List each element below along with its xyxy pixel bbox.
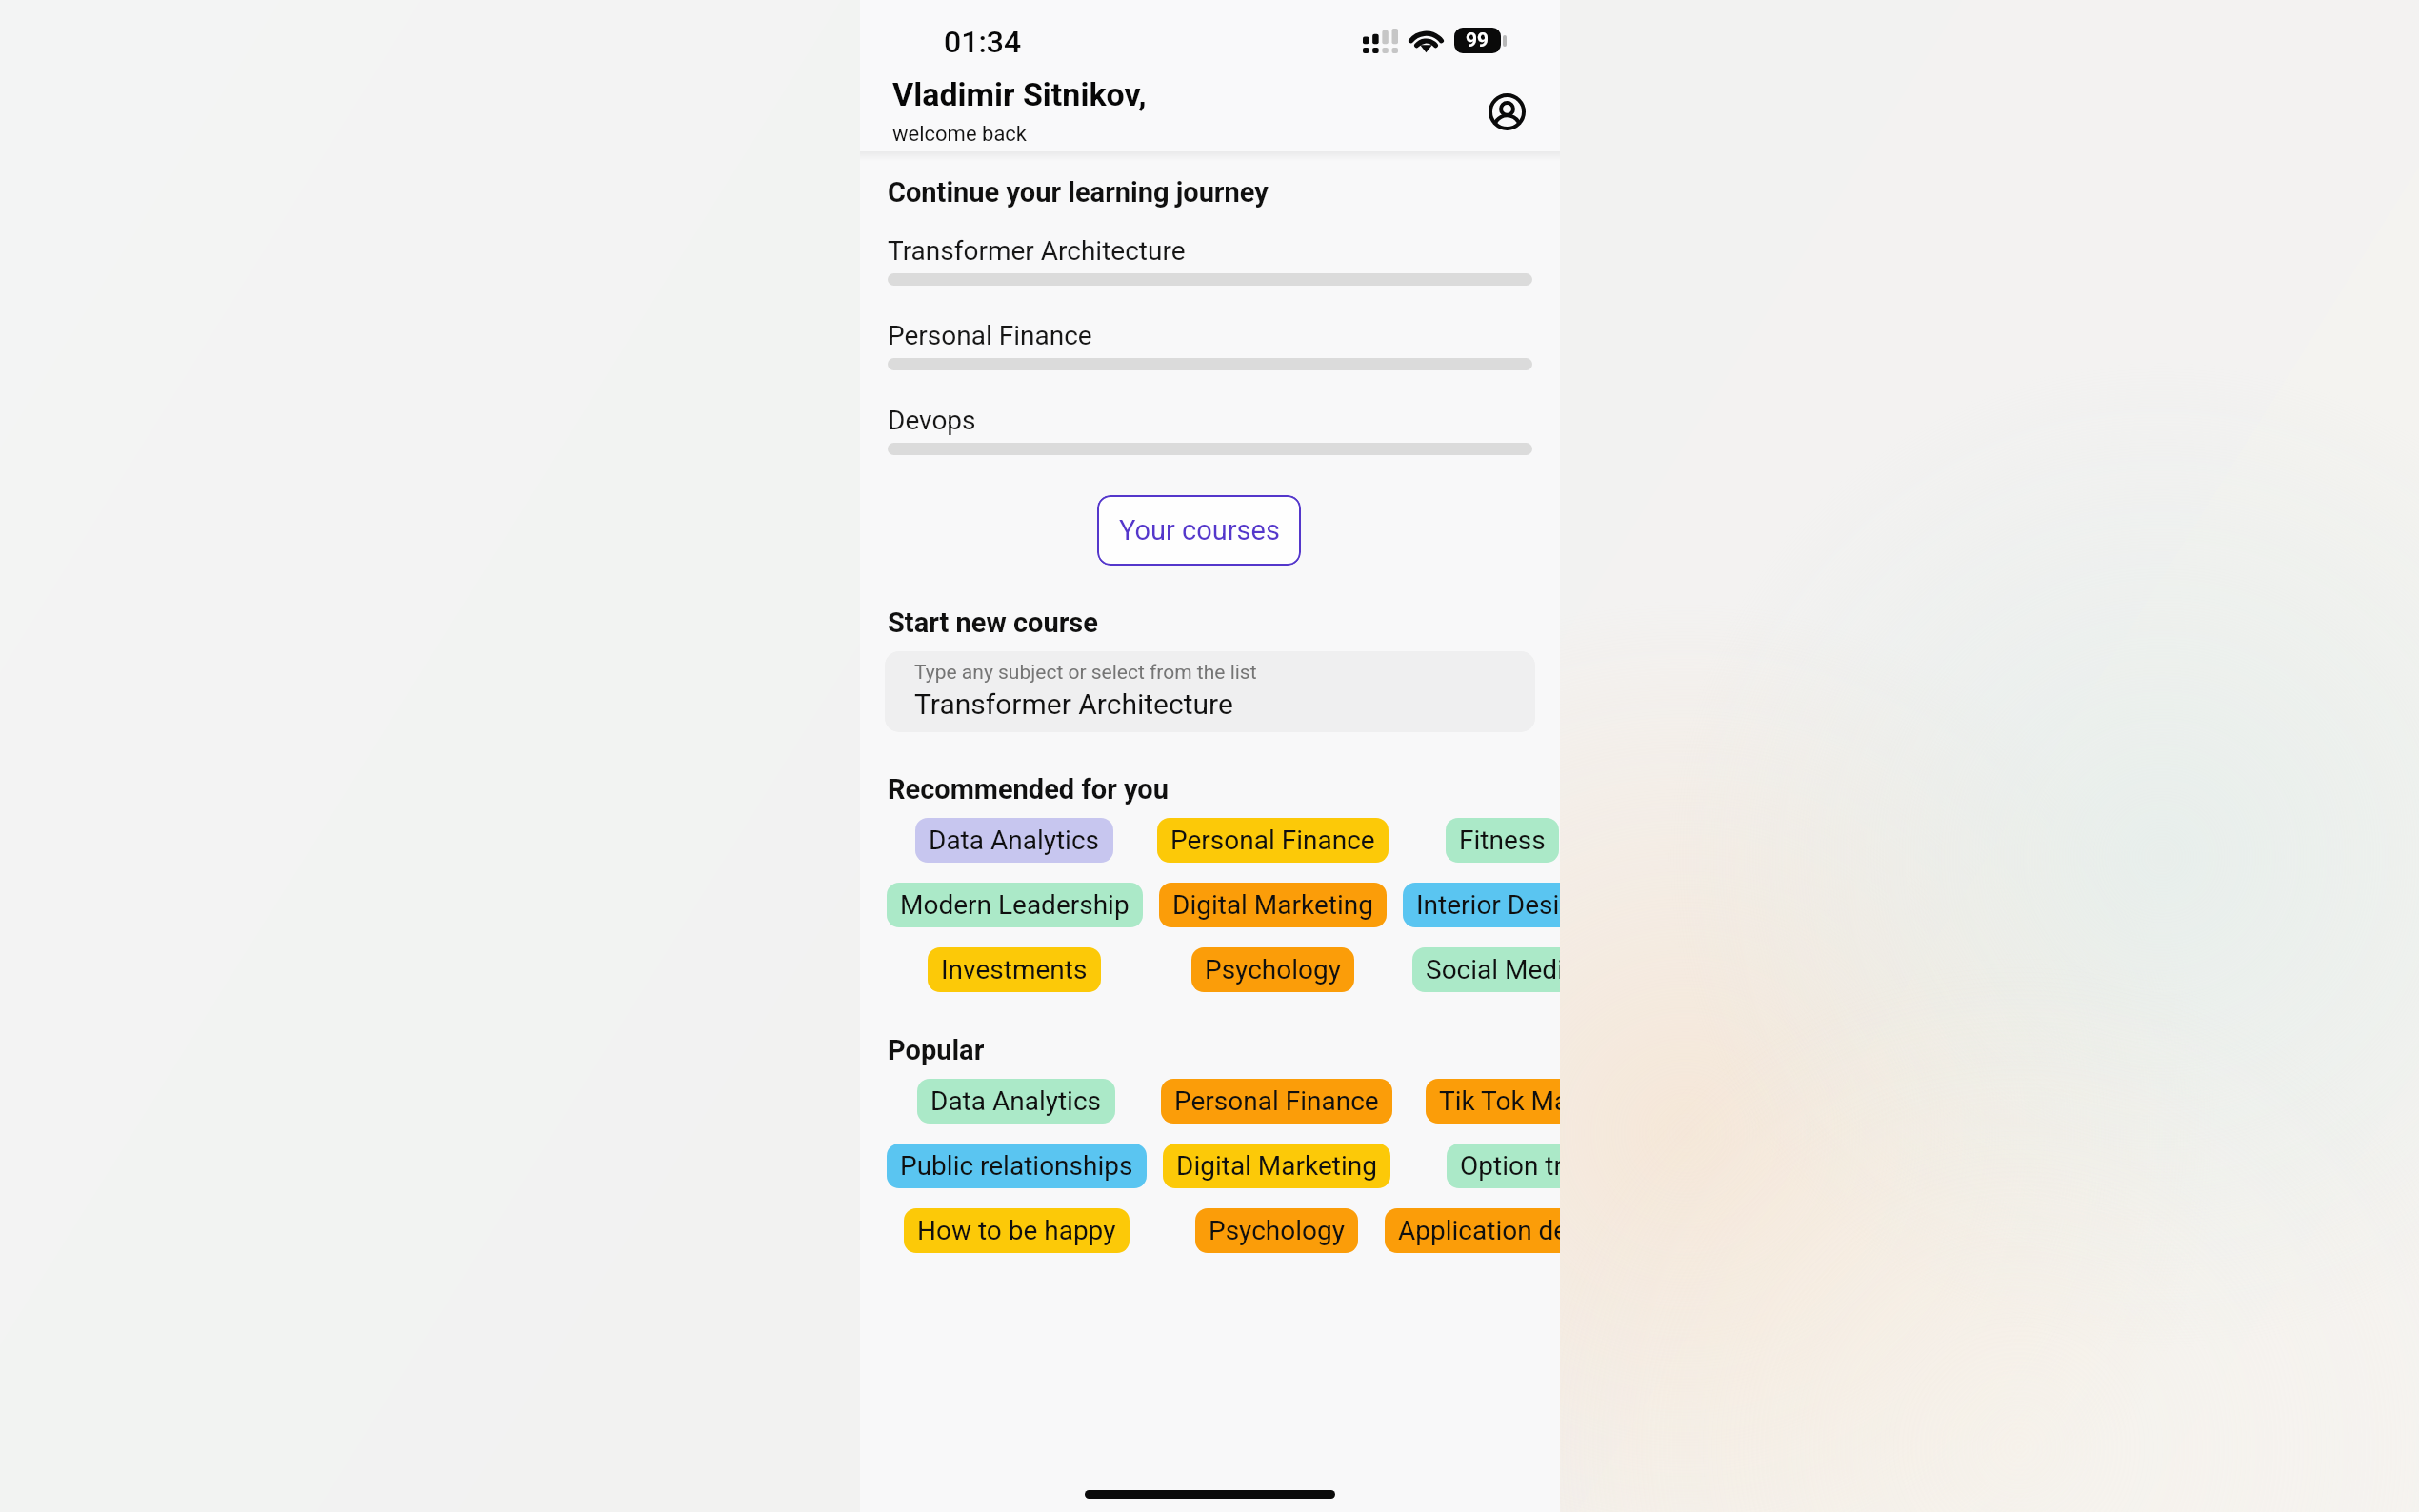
staticText: Public relationships [900,1150,1133,1182]
button[interactable]: Social Media [1412,947,1560,992]
staticText: Personal Finance [1170,825,1375,856]
staticText: Personal Finance [888,320,1092,351]
staticText: 01:34 [944,24,1022,60]
staticText: Continue your learning journey [888,176,1269,209]
staticText: Transformer Architecture [888,235,1186,267]
staticText: Data Analytics [929,825,1100,856]
button[interactable]: Digital Marketing [1163,1144,1390,1188]
staticText: Devops [888,405,976,436]
staticText: Psychology [1209,1215,1345,1246]
staticText: Data Analytics [930,1085,1102,1117]
staticText: Modern Leadership [900,889,1130,921]
button[interactable]: How to be happy [904,1208,1130,1253]
button[interactable]: Psychology [1195,1208,1358,1253]
button[interactable]: Investments [928,947,1101,992]
staticText: Application development [1398,1215,1560,1246]
staticText: Personal Finance [1174,1085,1379,1117]
button[interactable]: Data Analytics [917,1079,1115,1124]
button[interactable]: Fitness [1446,818,1559,863]
staticText: Transformer Architecture [914,687,1233,721]
button[interactable]: Account [1479,84,1535,140]
staticText: Popular [888,1034,985,1066]
staticText: Your courses [1119,514,1280,547]
button[interactable]: Modern Leadership [887,883,1143,927]
button[interactable]: Option trading [1447,1144,1560,1188]
button[interactable]: Psychology [1191,947,1354,992]
staticText: Digital Marketing [1172,889,1373,921]
staticText: Social Media [1426,954,1560,985]
staticText: Recommended for you [888,773,1169,806]
button[interactable]: Data Analytics [915,818,1113,863]
button[interactable]: Type any subject or select from the list [885,651,1535,732]
button[interactable]: Digital Marketing [1159,883,1387,927]
staticText: Interior Design [1416,889,1560,921]
staticText: Vladimir Sitnikov, [892,75,1147,113]
button[interactable]: Personal Finance [1161,1079,1392,1124]
staticText: Start new course [888,607,1098,639]
button[interactable]: Application development [1385,1208,1560,1253]
staticText: Option trading [1460,1150,1560,1182]
button[interactable]: Interior Design [1403,883,1560,927]
staticText: How to be happy [917,1215,1116,1246]
staticText: Fitness [1459,825,1546,856]
staticText: Investments [941,954,1088,985]
staticText: Type any subject or select from the list [914,661,1257,685]
button[interactable]: Public relationships [887,1144,1147,1188]
button[interactable]: Tik Tok Marketing [1426,1079,1560,1124]
staticText: 99 [1466,29,1489,52]
staticText: welcome back [892,122,1028,147]
staticText: Tik Tok Marketing [1439,1085,1560,1117]
staticText: Psychology [1205,954,1341,985]
button[interactable]: Your courses [1097,495,1301,566]
button[interactable]: Personal Finance [1157,818,1389,863]
staticText: Digital Marketing [1176,1150,1377,1182]
